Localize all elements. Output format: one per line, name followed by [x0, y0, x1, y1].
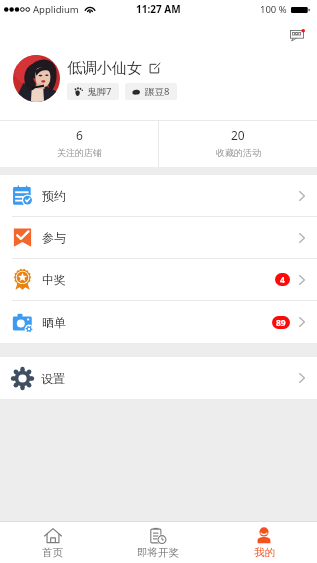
staticText: 中奖	[42, 272, 66, 287]
button[interactable]: Profile photo	[13, 55, 60, 102]
staticText: 鬼脚7	[87, 85, 112, 98]
button[interactable]: 首页	[0, 522, 105, 563]
button[interactable]: 设置	[0, 357, 317, 399]
staticText: 100 %	[260, 3, 287, 16]
staticText: 6	[76, 127, 83, 143]
staticText: 11:27 AM	[136, 2, 181, 16]
button[interactable]: 20	[159, 121, 317, 167]
button[interactable]: 蹍豆8	[125, 83, 177, 100]
staticText: Applidium	[33, 3, 79, 16]
staticText: 设置	[41, 371, 65, 386]
staticText: 4	[280, 274, 285, 286]
button[interactable]: 晒单	[0, 301, 317, 343]
staticText: 预约	[42, 188, 66, 203]
button[interactable]: 参与	[0, 217, 317, 258]
staticText: 参与	[42, 230, 66, 245]
staticText: 蹍豆8	[145, 85, 170, 98]
staticText: 收藏的活动	[216, 147, 261, 158]
button[interactable]: 我的	[211, 522, 317, 563]
button[interactable]: 中奖	[0, 259, 317, 300]
button[interactable]: 鬼脚7	[67, 83, 119, 100]
staticText: 我的	[254, 546, 275, 559]
staticText: 晒单	[42, 315, 66, 330]
staticText: 低调小仙女	[67, 59, 142, 78]
button[interactable]: 6	[0, 121, 158, 167]
button[interactable]: Messages	[290, 30, 304, 41]
button[interactable]: 即将开奖	[105, 522, 211, 563]
button[interactable]: Edit profile	[149, 63, 160, 74]
staticText: 20	[231, 127, 245, 143]
staticText: 关注的店铺	[57, 147, 102, 158]
button[interactable]: 预约	[0, 175, 317, 216]
staticText: 首页	[42, 546, 63, 559]
staticText: 即将开奖	[137, 546, 179, 559]
staticText: 89	[276, 317, 286, 329]
